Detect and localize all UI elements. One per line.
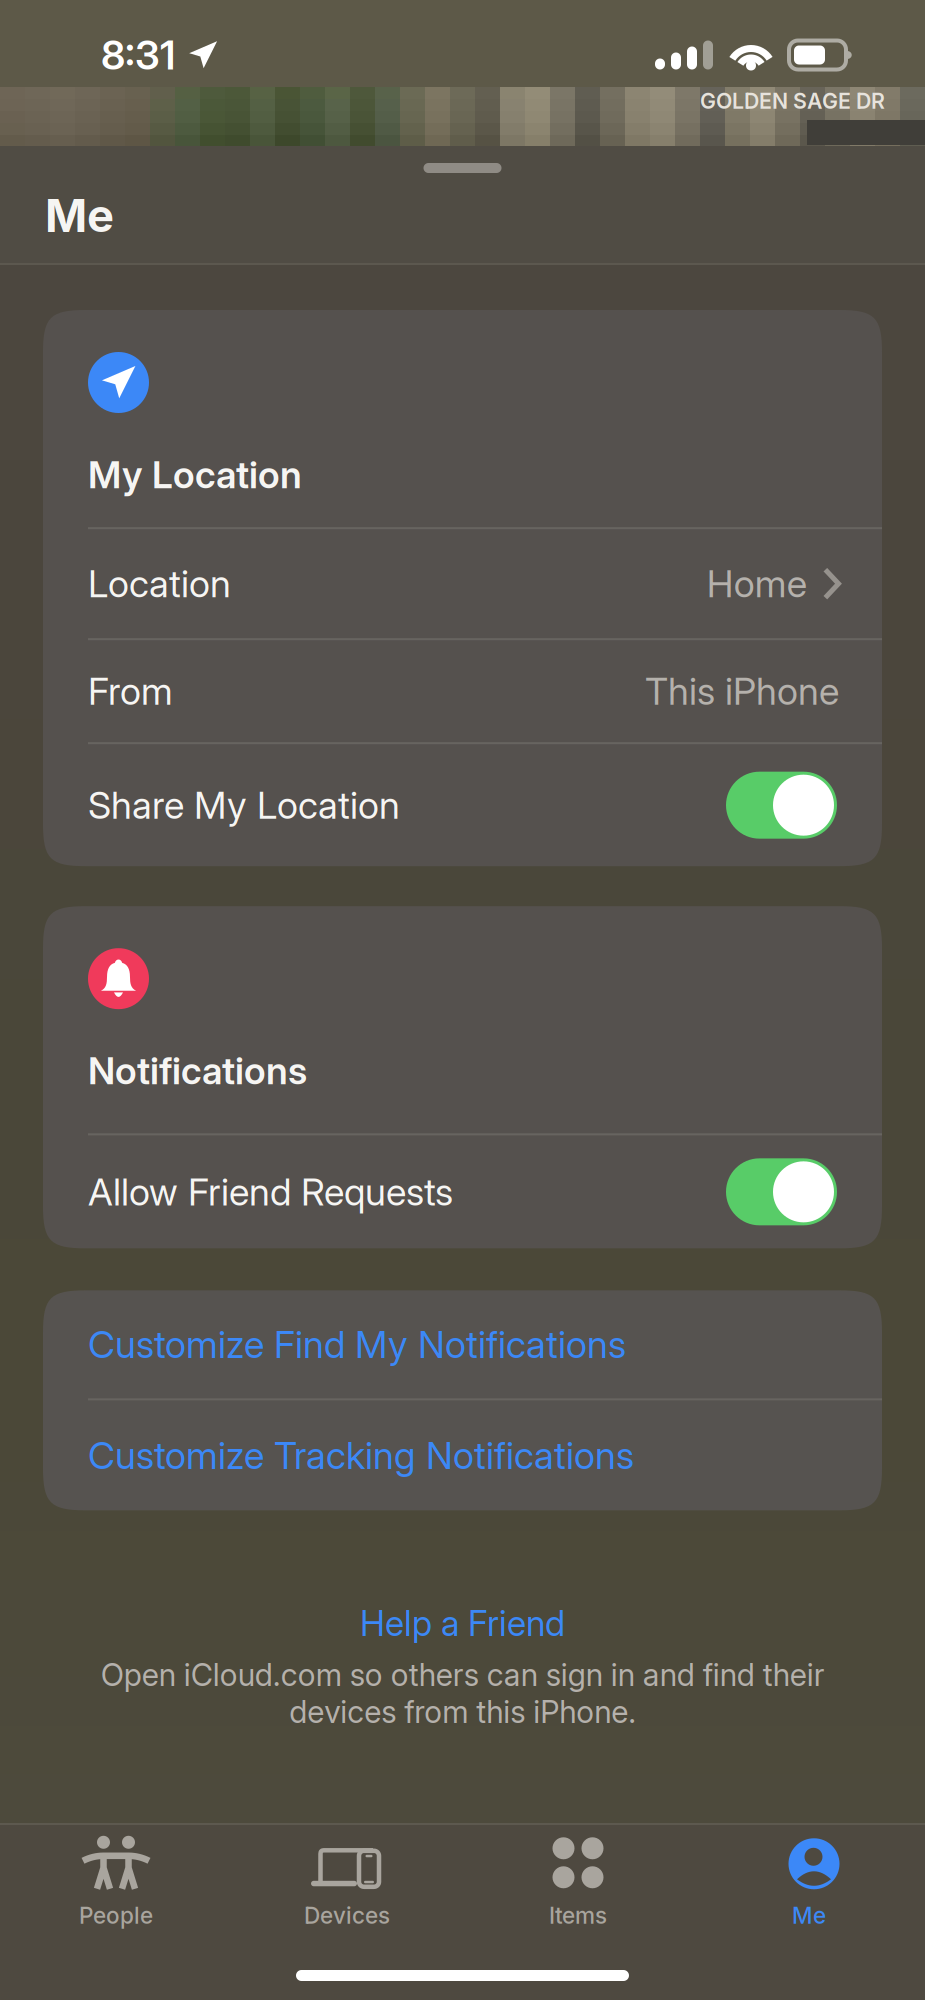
button[interactable]: Me <box>693 1834 924 1929</box>
button[interactable]: Help a Friend <box>344 1596 581 1650</box>
staticText: Share My Location <box>88 783 400 828</box>
staticText: Home <box>707 561 807 606</box>
staticText: Open iCloud.com so others can sign in an… <box>100 1656 824 1730</box>
staticText: Location <box>88 561 231 606</box>
staticText: This iPhone <box>645 669 839 714</box>
staticText: Customize Tracking Notifications <box>88 1433 634 1478</box>
staticText: Me <box>45 188 114 243</box>
staticText: People <box>79 1902 153 1929</box>
staticText: GOLDEN SAGE DR <box>700 88 885 114</box>
button[interactable]: Allow Friend Requests <box>43 1135 882 1248</box>
staticText: From <box>88 669 173 714</box>
staticText: Items <box>549 1902 607 1929</box>
button[interactable]: Customize Tracking Notifications <box>43 1400 882 1510</box>
button[interactable]: Share My Location <box>43 744 882 866</box>
staticText: Notifications <box>88 1048 307 1093</box>
staticText: Allow Friend Requests <box>88 1169 453 1214</box>
staticText: Me <box>792 1902 826 1929</box>
staticText: Help a Friend <box>360 1602 565 1644</box>
staticText: Customize Find My Notifications <box>88 1322 626 1367</box>
button[interactable]: People <box>0 1834 231 1929</box>
staticText: My Location <box>88 452 302 497</box>
button[interactable]: Devices <box>231 1834 462 1929</box>
button[interactable]: Location <box>43 529 882 638</box>
button[interactable]: Items <box>462 1834 693 1929</box>
staticText: Devices <box>304 1902 390 1929</box>
button[interactable]: Customize Find My Notifications <box>43 1290 882 1398</box>
staticText: 8:31 <box>101 31 175 79</box>
